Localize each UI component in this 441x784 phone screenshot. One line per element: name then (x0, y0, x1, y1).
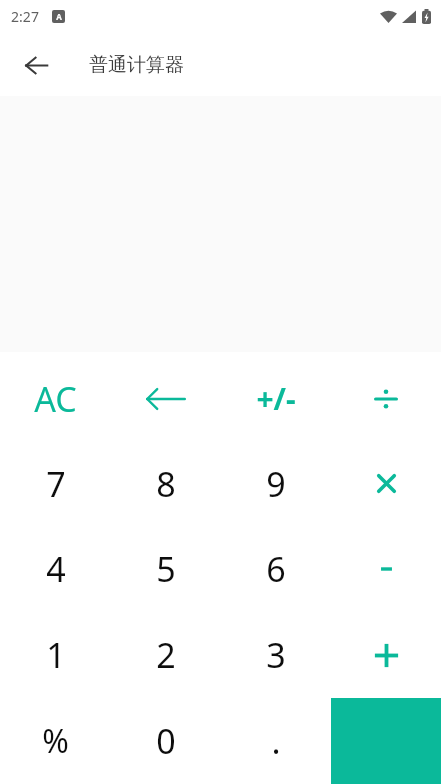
button[interactable]: 9 (221, 441, 331, 526)
button[interactable]: 3 (221, 612, 331, 698)
staticText: % (42, 719, 69, 763)
staticText: 3 (266, 632, 286, 678)
button[interactable]: 1 (0, 612, 111, 698)
button[interactable]: 2 (111, 612, 221, 698)
staticText: 2 (156, 632, 176, 678)
button[interactable]: 6 (221, 526, 331, 612)
button[interactable]: 4 (0, 526, 111, 612)
button[interactable]: % (0, 698, 111, 784)
button[interactable]: Multiply (331, 441, 441, 526)
staticText: A (56, 11, 62, 22)
staticText: 8 (156, 461, 176, 507)
staticText: 5 (156, 546, 176, 592)
staticText: +/- (256, 378, 296, 419)
button[interactable]: 5 (111, 526, 221, 612)
button[interactable]: . (221, 698, 331, 784)
button[interactable]: Back (15, 44, 57, 86)
staticText: 4 (46, 546, 66, 592)
button[interactable]: 7 (0, 441, 111, 526)
staticText: 0 (156, 718, 176, 764)
button[interactable]: +/- (221, 356, 331, 441)
staticText: 7 (46, 461, 66, 507)
staticText: 9 (266, 461, 286, 507)
button[interactable]: Plus (331, 612, 441, 698)
button[interactable]: 0 (111, 698, 221, 784)
staticText: 1 (46, 632, 66, 678)
staticText: . (271, 718, 281, 764)
staticText: 2:27 (11, 7, 39, 26)
button[interactable]: Divide (331, 356, 441, 441)
button[interactable]: Minus (331, 526, 441, 612)
staticText: 6 (266, 546, 286, 592)
button[interactable]: 8 (111, 441, 221, 526)
staticText: 普通计算器 (89, 53, 184, 77)
button[interactable]: AC (0, 356, 111, 441)
button[interactable]: Backspace (111, 356, 221, 441)
staticText: AC (34, 376, 77, 422)
